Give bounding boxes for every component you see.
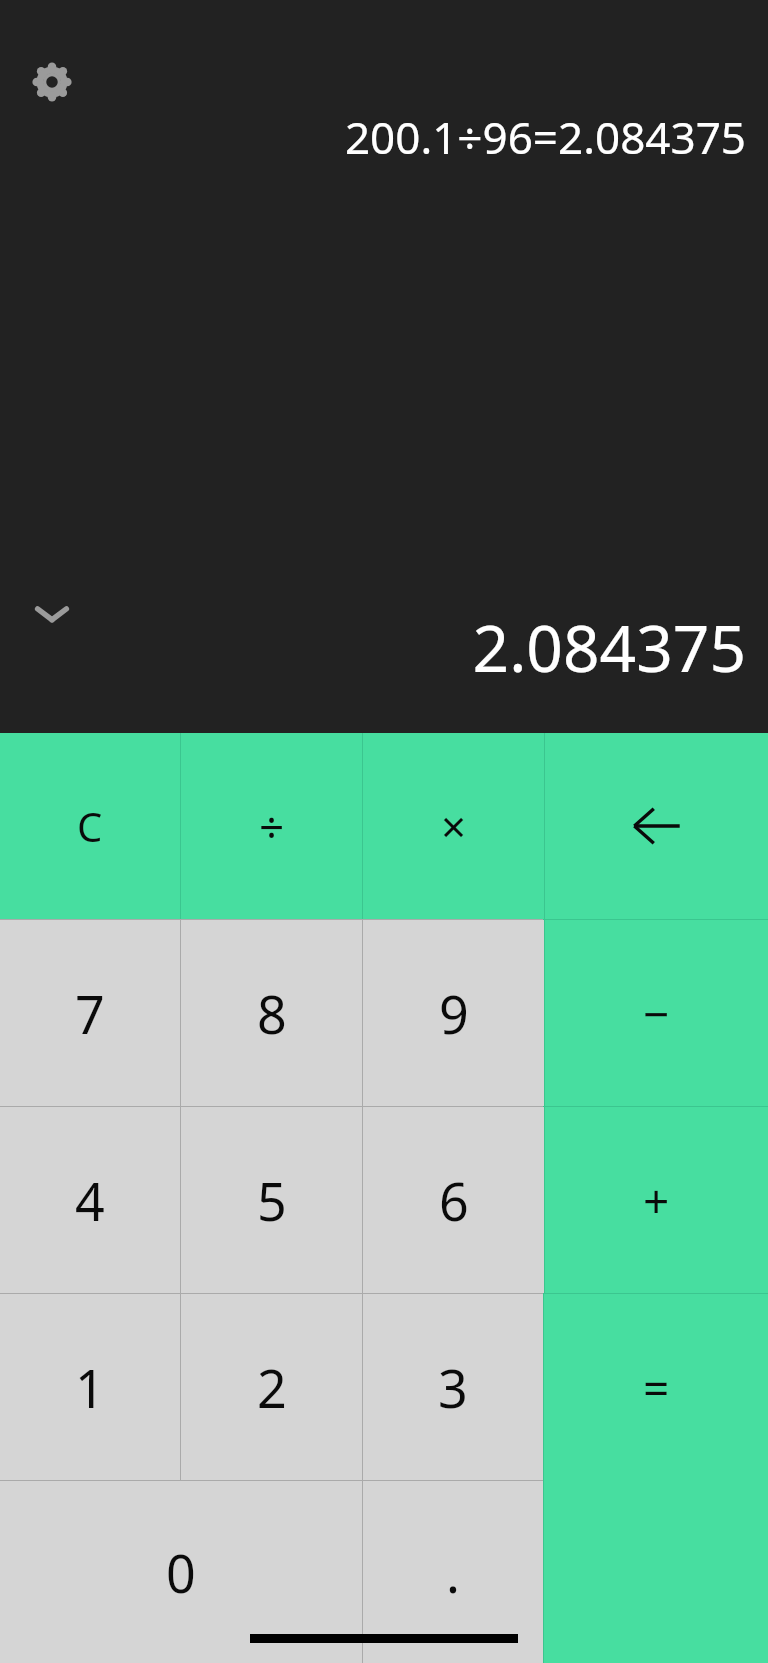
staticText: 1 (75, 1352, 105, 1423)
staticText: 2 (257, 1352, 287, 1423)
staticText: + (643, 1169, 670, 1232)
staticText: C (77, 799, 103, 853)
staticText: 7 (75, 978, 105, 1049)
staticText: ÷ (259, 796, 285, 856)
staticText: 6 (439, 1165, 469, 1236)
button[interactable]: 9 (363, 920, 544, 1106)
button[interactable]: 4 (0, 1107, 180, 1293)
button[interactable]: 6 (363, 1107, 544, 1293)
staticText: 0 (166, 1537, 196, 1608)
staticText: 5 (257, 1165, 287, 1236)
button[interactable]: = (544, 1294, 768, 1663)
staticText: = (643, 1356, 670, 1419)
button[interactable]: 1 (0, 1294, 180, 1480)
button[interactable]: Expand history (20, 582, 84, 646)
button[interactable]: . (363, 1481, 543, 1663)
staticText: 3 (438, 1352, 468, 1423)
button[interactable]: − (545, 920, 768, 1106)
button[interactable]: 7 (0, 920, 180, 1106)
button[interactable]: ÷ (181, 733, 362, 919)
staticText: 9 (439, 978, 469, 1049)
button[interactable]: 2 (181, 1294, 362, 1480)
staticText: 200.1÷96=2.084375 (0, 107, 746, 167)
button[interactable]: + (545, 1107, 768, 1293)
staticText: × (441, 796, 467, 856)
button[interactable]: × (363, 733, 544, 919)
staticText: 4 (75, 1165, 105, 1236)
button[interactable]: Settings (22, 52, 82, 112)
button[interactable]: 5 (181, 1107, 362, 1293)
staticText: − (643, 982, 670, 1045)
staticText: . (446, 1537, 460, 1608)
staticText: 8 (257, 978, 287, 1049)
button[interactable]: Backspace (545, 733, 768, 919)
button[interactable]: C (0, 733, 180, 919)
staticText: 2.084375 (0, 604, 746, 691)
button[interactable]: 3 (363, 1294, 543, 1480)
button[interactable]: 8 (181, 920, 362, 1106)
button[interactable]: 0 (0, 1481, 362, 1663)
